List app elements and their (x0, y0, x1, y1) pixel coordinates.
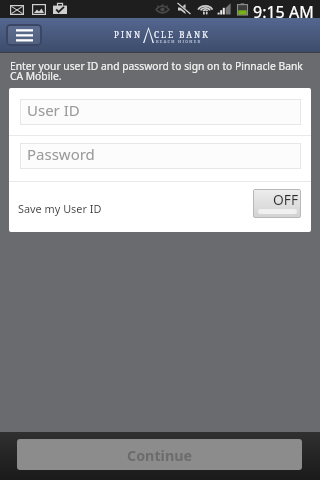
staticText: Enter your user ID and password to sign … (10, 59, 303, 83)
staticText: CLE BANK (154, 29, 210, 40)
button[interactable]: Menu (6, 24, 42, 46)
button[interactable]: User ID (20, 99, 301, 125)
staticText: 9:15 AM (253, 1, 314, 19)
staticText: REACH HIGHER (156, 39, 202, 44)
button[interactable]: Password (20, 143, 301, 169)
button[interactable]: Continue (17, 439, 302, 470)
button[interactable]: Save my User ID, off (253, 189, 301, 218)
staticText: PINN (114, 29, 143, 40)
staticText: User ID (27, 100, 80, 120)
staticText: Password (27, 144, 95, 164)
staticText: Save my User ID (18, 201, 102, 216)
staticText: OFF (273, 190, 299, 209)
staticText: Continue (127, 446, 193, 465)
